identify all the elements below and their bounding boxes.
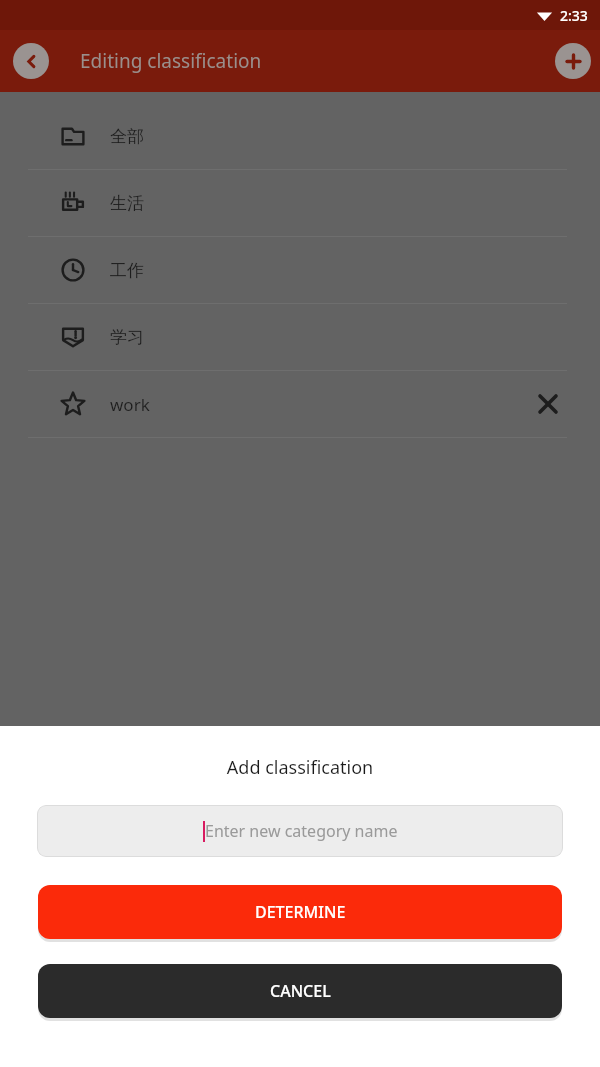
staticText: DETERMINE (255, 901, 346, 923)
button[interactable]: 全部 (0, 103, 600, 169)
button[interactable]: 工作 (0, 237, 600, 303)
staticText: Enter new category name (205, 820, 398, 842)
staticText: Add classification (0, 755, 600, 780)
staticText: 工作 (110, 260, 144, 281)
staticText: 生活 (110, 193, 144, 214)
staticText: 全部 (110, 126, 144, 147)
staticText: 学习 (110, 327, 144, 348)
button[interactable]: Add classification (555, 43, 591, 79)
button[interactable]: Enter new category name (37, 805, 563, 857)
staticText: 2:33 (560, 6, 588, 25)
button[interactable]: CANCEL (38, 964, 562, 1018)
staticText: CANCEL (270, 980, 331, 1002)
staticText: Editing classification (80, 48, 262, 74)
button[interactable]: Back (13, 43, 49, 79)
button[interactable]: Delete category (526, 382, 570, 426)
button[interactable]: 生活 (0, 170, 600, 236)
button[interactable]: 学习 (0, 304, 600, 370)
button[interactable]: DETERMINE (38, 885, 562, 939)
button[interactable]: work (0, 371, 600, 437)
staticText: work (110, 393, 150, 416)
